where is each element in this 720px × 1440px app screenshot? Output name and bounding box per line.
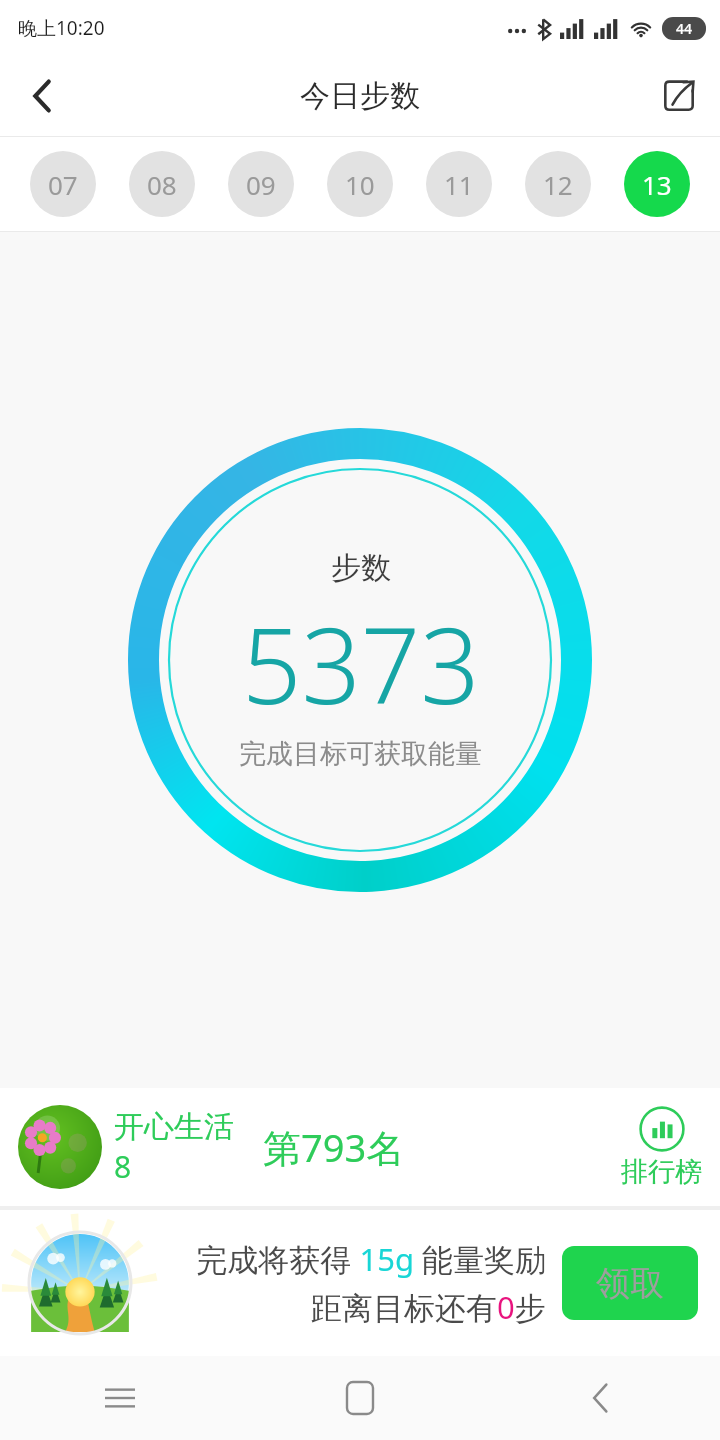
staticText: 今日步数 — [300, 77, 420, 115]
button[interactable]: 10 — [327, 151, 393, 217]
staticText: 5373 — [242, 593, 480, 735]
staticText: 开心生活8 — [114, 1108, 249, 1187]
button[interactable]: Share — [650, 67, 708, 125]
button[interactable]: 11 — [426, 151, 492, 217]
staticText: 13 — [642, 167, 672, 202]
staticText: 步数 — [331, 549, 391, 587]
staticText: 排行榜 — [621, 1155, 702, 1189]
staticText: 晚上10:20 — [18, 15, 105, 41]
button[interactable]: 开心生活8 — [0, 1088, 720, 1206]
button[interactable]: 07 — [30, 151, 96, 217]
button[interactable]: 09 — [228, 151, 294, 217]
staticText: 44 — [676, 19, 693, 38]
button[interactable]: Home — [240, 1356, 480, 1440]
button[interactable]: Back — [480, 1356, 720, 1440]
staticText: 第793名 — [263, 1121, 405, 1173]
staticText: 07 — [48, 167, 78, 202]
staticText: 距离目标还有0步 — [311, 1286, 546, 1328]
button[interactable]: 排行榜 — [621, 1106, 702, 1189]
staticText: 08 — [147, 167, 177, 202]
staticText: 完成将获得 15g 能量奖励 — [196, 1238, 546, 1280]
button[interactable]: Menu — [0, 1356, 240, 1440]
button[interactable]: 领取 — [562, 1246, 698, 1320]
button[interactable]: 12 — [525, 151, 591, 217]
staticText: 09 — [246, 167, 276, 202]
staticText: 完成目标可获取能量 — [239, 737, 482, 771]
button[interactable]: 13 — [624, 151, 690, 217]
staticText: 领取 — [596, 1262, 664, 1305]
button[interactable]: Back — [14, 68, 70, 124]
button[interactable]: 08 — [129, 151, 195, 217]
staticText: 11 — [444, 167, 474, 202]
staticText: 12 — [543, 167, 573, 202]
staticText: 10 — [345, 167, 375, 202]
